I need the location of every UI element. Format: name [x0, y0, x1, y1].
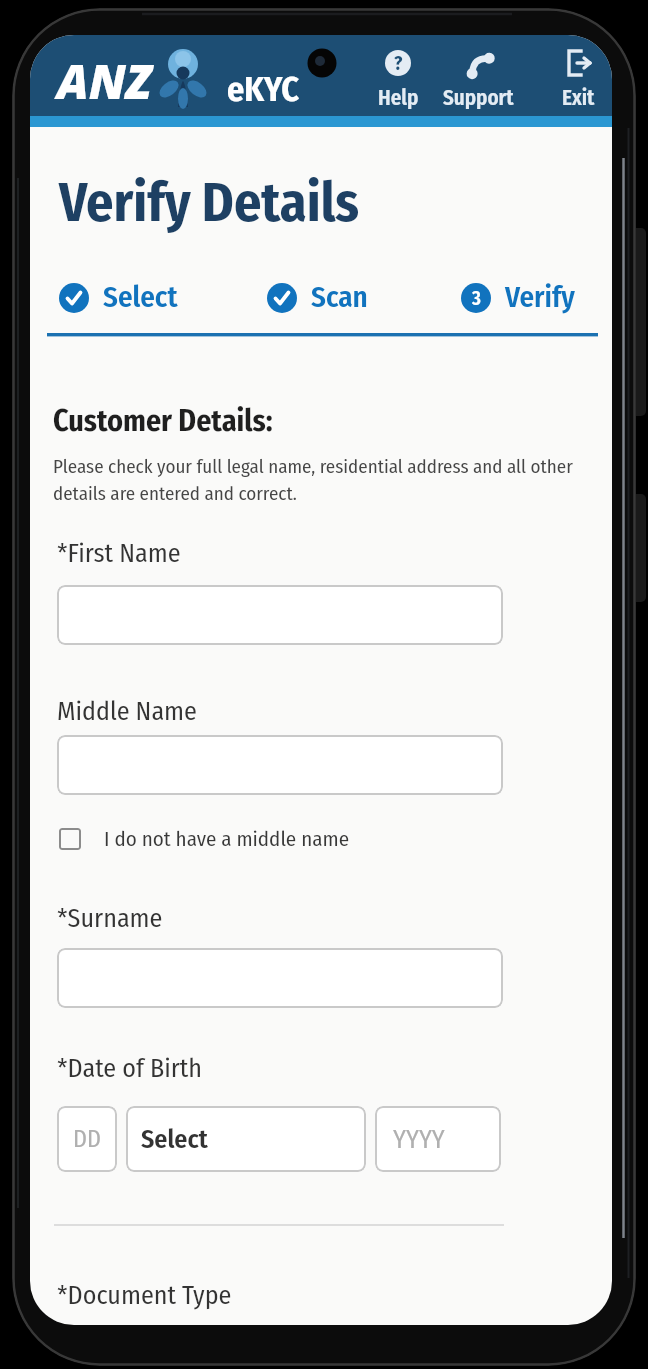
button[interactable]: YYYY — [375, 1106, 501, 1172]
staticText: YYYY — [393, 1124, 445, 1155]
staticText: DD — [73, 1125, 101, 1154]
button[interactable]: Support — [438, 45, 518, 109]
button[interactable] — [57, 735, 503, 795]
staticText: *Surname — [57, 903, 163, 934]
button[interactable] — [57, 948, 503, 1008]
button[interactable] — [57, 585, 503, 645]
button[interactable]: Select — [126, 1106, 366, 1172]
button[interactable]: DD — [57, 1106, 117, 1172]
staticText: *First Name — [57, 538, 181, 569]
staticText: Select — [103, 280, 178, 315]
staticText: Please check your full legal name, resid… — [53, 455, 591, 505]
staticText: ANZ — [57, 49, 152, 113]
staticText: Help — [378, 85, 419, 109]
staticText: Exit — [562, 85, 595, 109]
staticText: Support — [443, 85, 514, 109]
staticText: 3 — [472, 287, 481, 310]
staticText: *Document Type — [57, 1280, 232, 1311]
button[interactable]: I do not have a middle name — [59, 826, 350, 851]
staticText: *Date of Birth — [57, 1053, 203, 1084]
staticText: I do not have a middle name — [104, 826, 350, 851]
staticText: Verify — [505, 280, 575, 315]
staticText: ? — [394, 52, 403, 75]
staticText: Middle Name — [57, 696, 197, 727]
staticText: eKYC — [227, 69, 299, 110]
button[interactable]: ? — [358, 45, 438, 109]
staticText: Customer Details: — [53, 403, 273, 439]
staticText: Scan — [311, 280, 368, 315]
staticText: Verify Details — [59, 171, 360, 236]
button[interactable]: Exit — [538, 45, 612, 109]
staticText: Select — [141, 1124, 208, 1155]
